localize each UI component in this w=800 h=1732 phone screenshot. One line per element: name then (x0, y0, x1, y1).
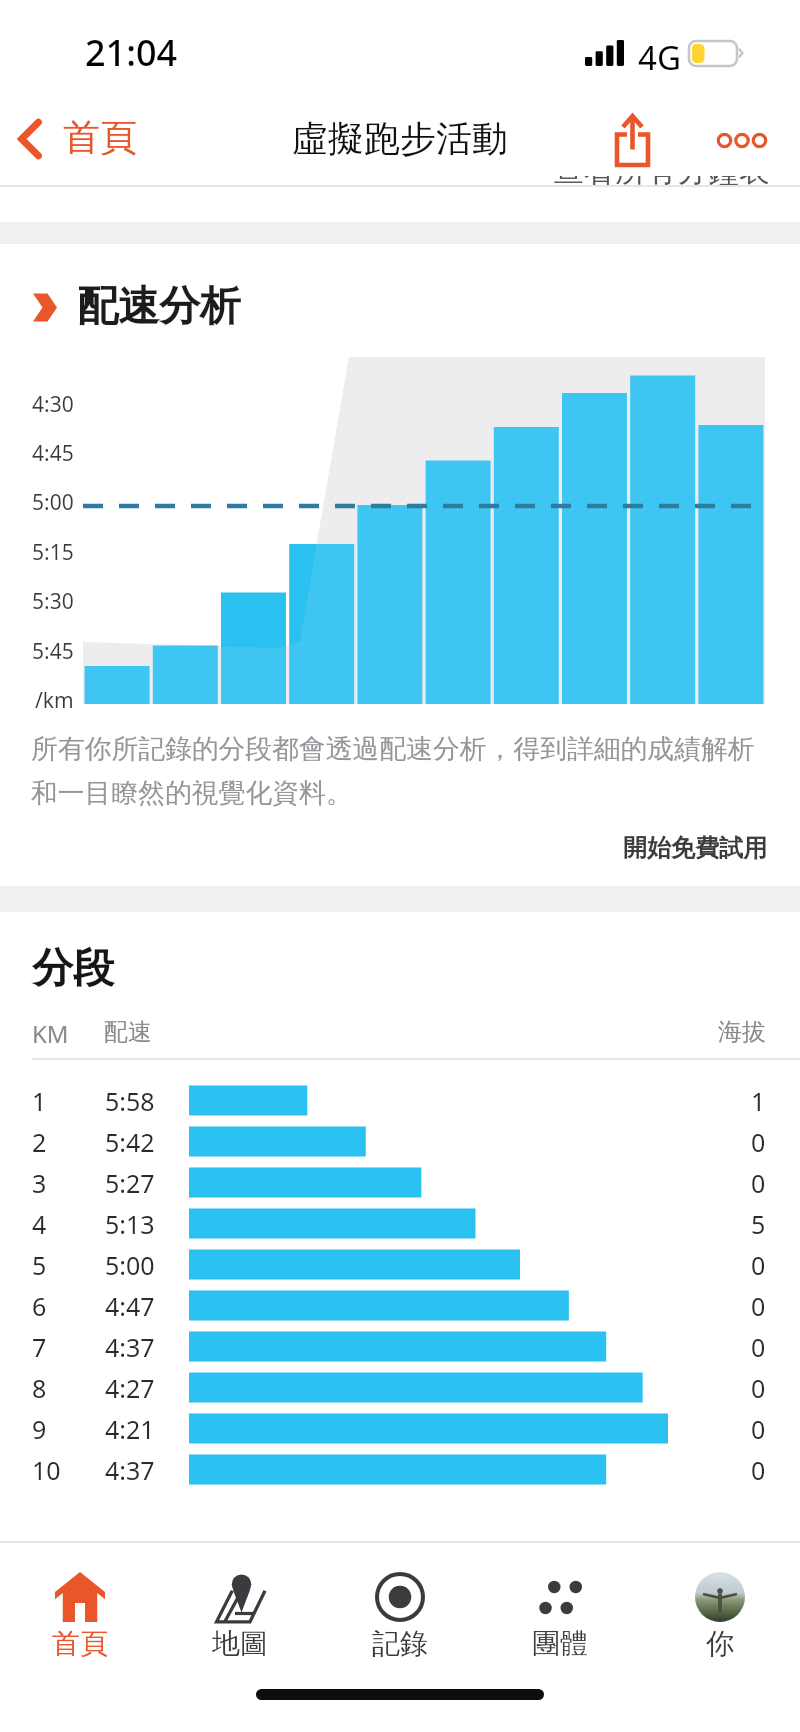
button[interactable]: 首頁 (6, 115, 149, 162)
button[interactable]: 配速分析 (32, 281, 241, 333)
staticText: 5:27 (105, 1166, 155, 1200)
staticText: 5:00 (32, 488, 74, 517)
staticText: 7 (32, 1330, 47, 1364)
staticText: 5:42 (105, 1125, 155, 1159)
staticText: 5:00 (105, 1248, 155, 1282)
button[interactable]: 首頁 (0, 1543, 160, 1667)
button[interactable]: More options (706, 112, 778, 170)
button[interactable]: 7 (0, 1326, 800, 1367)
staticText: 6 (32, 1289, 47, 1323)
staticText: 5:13 (105, 1207, 155, 1241)
button[interactable]: 團體 (480, 1543, 640, 1667)
staticText: 4:47 (105, 1289, 155, 1323)
staticText: 海拔 (718, 1017, 766, 1047)
staticText: 0 (751, 1248, 766, 1282)
staticText: 配速 (104, 1017, 152, 1047)
staticText: 地圖 (212, 1626, 268, 1661)
staticText: 配速分析 (77, 281, 241, 333)
staticText: 5:45 (32, 637, 74, 666)
staticText: 21:04 (85, 28, 178, 77)
button[interactable]: 10 (0, 1449, 800, 1490)
staticText: KM (32, 1017, 69, 1050)
button[interactable]: 3 (0, 1162, 800, 1203)
staticText: 首頁 (63, 114, 137, 161)
staticText: 4:30 (32, 390, 74, 419)
staticText: 4:37 (105, 1453, 155, 1487)
staticText: 2 (32, 1125, 47, 1159)
staticText: 4:37 (105, 1330, 155, 1364)
staticText: 9 (32, 1412, 47, 1446)
button[interactable]: 開始免費試用 (623, 833, 800, 863)
button[interactable]: 記錄 (320, 1543, 480, 1667)
staticText: 查看所有分鐘表 (553, 151, 770, 190)
staticText: 0 (751, 1289, 766, 1323)
staticText: 0 (751, 1125, 766, 1159)
button[interactable]: 2 (0, 1121, 800, 1162)
staticText: 0 (751, 1330, 766, 1364)
staticText: 4G (638, 35, 681, 80)
button[interactable]: 9 (0, 1408, 800, 1449)
staticText: 虛擬跑步活動 (292, 116, 508, 161)
staticText: 4:21 (105, 1412, 155, 1446)
button[interactable]: 6 (0, 1285, 800, 1326)
staticText: 0 (751, 1371, 766, 1405)
staticText: 10 (32, 1453, 61, 1487)
staticText: 5:15 (32, 538, 74, 567)
staticText: 5 (32, 1248, 47, 1282)
staticText: 所有你所記錄的分段都會透過配速分析，得到詳細的成績解析 和一目瞭然的視覺化資料。 (31, 732, 755, 810)
staticText: 分段 (32, 943, 114, 995)
button[interactable]: 4 (0, 1203, 800, 1244)
staticText: 你 (706, 1626, 734, 1661)
button[interactable]: 地圖 (160, 1543, 320, 1667)
staticText: 開始免費試用 (623, 833, 767, 863)
staticText: 首頁 (52, 1626, 108, 1661)
button[interactable]: Share (605, 102, 661, 180)
button[interactable]: 5 (0, 1244, 800, 1285)
staticText: 3 (32, 1166, 47, 1200)
staticText: 4:45 (32, 439, 74, 468)
staticText: 8 (32, 1371, 47, 1405)
staticText: /km (35, 686, 74, 715)
staticText: 5 (751, 1207, 766, 1241)
staticText: 0 (751, 1453, 766, 1487)
staticText: 4:27 (105, 1371, 155, 1405)
staticText: 1 (751, 1084, 766, 1118)
staticText: 1 (32, 1084, 47, 1118)
staticText: 5:58 (105, 1084, 155, 1118)
staticText: 團體 (532, 1626, 588, 1661)
staticText: 4 (32, 1207, 47, 1241)
staticText: 記錄 (372, 1626, 428, 1661)
staticText: 5:30 (32, 587, 74, 616)
staticText: 0 (751, 1166, 766, 1200)
button[interactable]: 1 (0, 1080, 800, 1121)
button[interactable]: 你 (640, 1543, 800, 1667)
staticText: 0 (751, 1412, 766, 1446)
button[interactable]: 8 (0, 1367, 800, 1408)
